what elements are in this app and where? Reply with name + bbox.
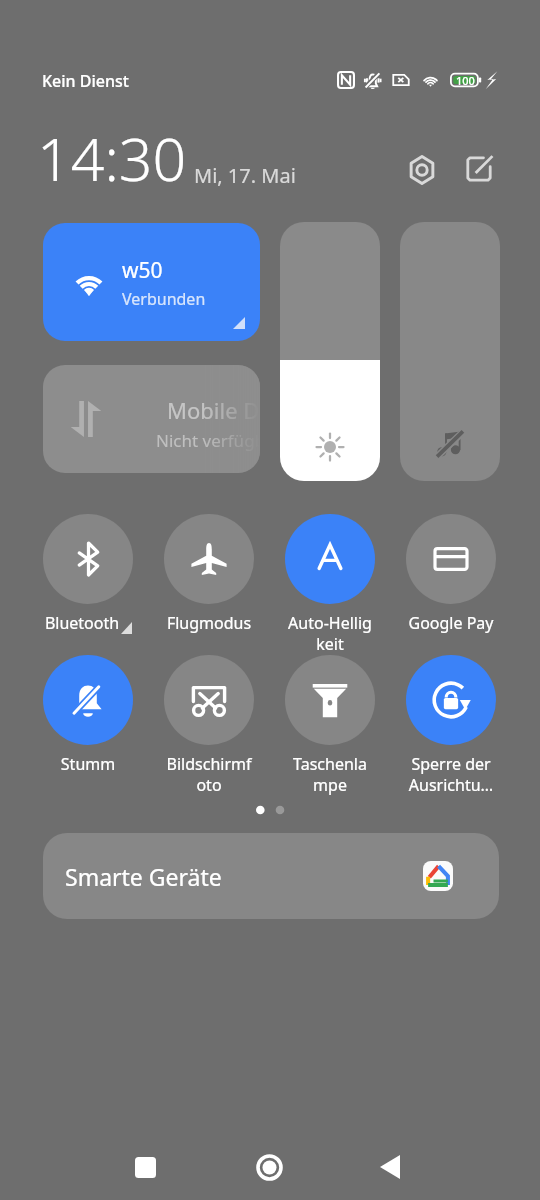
button[interactable]: Taschenla mpe [272, 655, 388, 797]
button[interactable]: Zurück [366, 1143, 414, 1191]
staticText: Sperre der Ausrichtu… [393, 753, 509, 796]
staticText: Bluetooth [24, 612, 140, 634]
staticText: 100 [456, 73, 475, 88]
staticText: Smarte Geräte [65, 861, 222, 892]
staticText: Mobile Daten [167, 395, 260, 425]
button[interactable]: Bluetooth [30, 514, 146, 656]
button[interactable]: Mobile Daten [43, 365, 260, 473]
staticText: Verbunden [122, 288, 206, 310]
button[interactable]: Startbildschirm [245, 1143, 293, 1191]
button[interactable]: Bildschirmf oto [151, 655, 267, 797]
staticText: Nicht verfügbar [156, 429, 260, 452]
button[interactable]: Flugmodus [151, 514, 267, 656]
staticText: Kein Dienst [42, 70, 129, 92]
button[interactable]: Stumm [30, 655, 146, 797]
button[interactable]: Google Pay [393, 514, 509, 656]
staticText: Stumm [30, 753, 146, 775]
button[interactable]: w50 [43, 223, 260, 341]
staticText: w50 [122, 256, 163, 285]
staticText: Bildschirmf oto [151, 753, 267, 796]
button[interactable]: Sperre der Ausrichtu… [393, 655, 509, 797]
staticText: Google Pay [393, 612, 509, 634]
button[interactable] [280, 222, 380, 481]
staticText: Auto-Hellig keit [272, 612, 388, 655]
button[interactable]: Auto-Hellig keit [272, 514, 388, 656]
staticText: Flugmodus [151, 612, 267, 634]
button[interactable]: Smarte Geräte [43, 833, 499, 919]
button[interactable]: Bearbeiten [455, 145, 503, 193]
button[interactable] [400, 222, 500, 481]
button[interactable]: Einstellungen [398, 146, 446, 194]
button[interactable]: Letzte Apps [121, 1143, 169, 1191]
staticText: 14:30 [37, 118, 187, 198]
staticText: Taschenla mpe [272, 753, 388, 796]
staticText: Mi, 17. Mai [194, 162, 296, 189]
